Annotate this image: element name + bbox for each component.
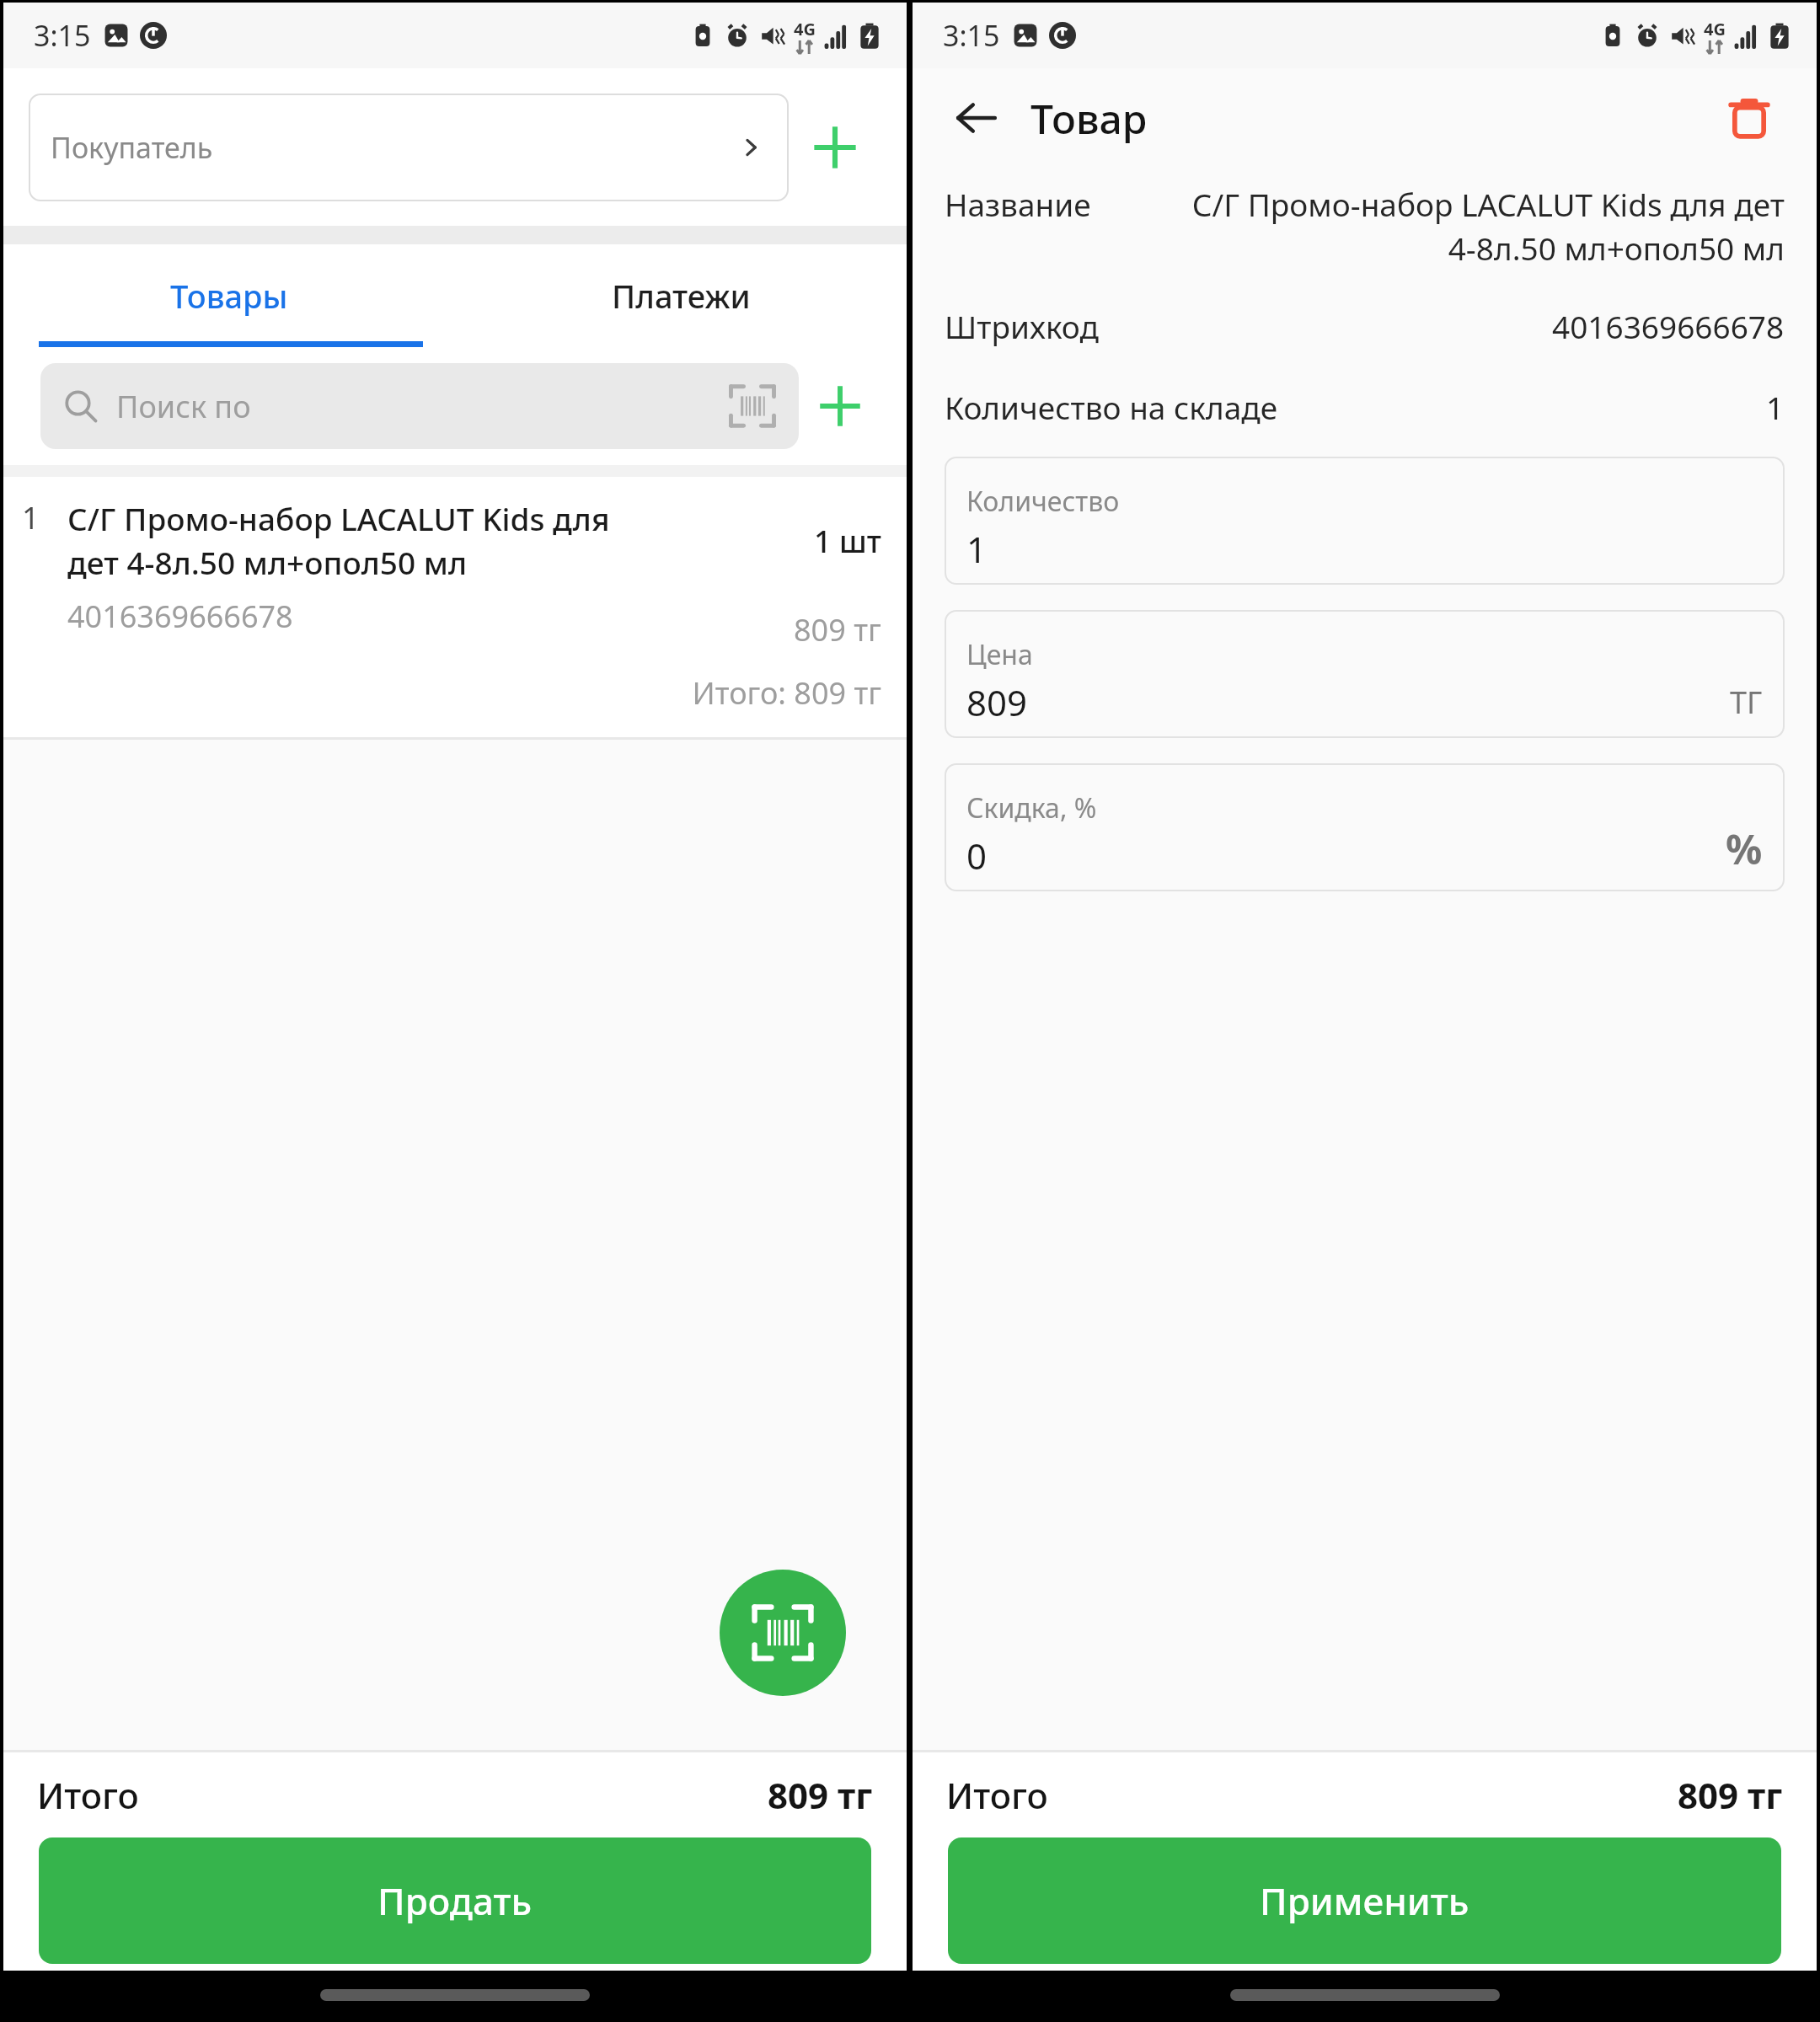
staticText: Товар — [1030, 91, 1712, 146]
staticText: 4G — [794, 18, 816, 40]
staticText: ТГ — [1730, 682, 1763, 723]
staticText: 0 — [966, 832, 988, 880]
staticText: Скидка, % — [966, 789, 1097, 826]
staticText: Применить — [1260, 1875, 1469, 1926]
staticText: 3:15 — [943, 16, 1000, 55]
staticText: Итого — [946, 1771, 1678, 1819]
staticText: 3:15 — [34, 16, 91, 55]
staticText: С/Г Промо-набор LACALUT Kids для дет 4-8… — [1138, 183, 1785, 270]
staticText: 809 тг — [1678, 1771, 1783, 1819]
button[interactable]: Товары — [3, 244, 455, 347]
button[interactable]: Цена — [945, 610, 1785, 738]
button[interactable]: Поиск по — [40, 363, 799, 449]
button[interactable]: Продать — [39, 1837, 871, 1964]
staticText: Штрихкод — [945, 305, 1552, 347]
staticText: Продать — [377, 1875, 533, 1926]
button[interactable]: Добавить покупателя — [789, 94, 881, 201]
staticText: % — [1726, 821, 1763, 876]
staticText: 809 тг — [768, 1771, 873, 1819]
staticText: 1 — [966, 525, 988, 573]
button[interactable]: Количество — [945, 457, 1785, 585]
staticText: 809 тг — [794, 609, 881, 650]
staticText: Количество на складе — [945, 386, 1766, 428]
button[interactable]: Добавить товар — [799, 363, 881, 449]
staticText: 1 — [1766, 386, 1785, 428]
button[interactable]: Скидка, % — [945, 763, 1785, 891]
button[interactable]: 1 — [3, 477, 907, 740]
button[interactable]: Покупатель — [29, 94, 789, 201]
button[interactable]: Применить — [948, 1837, 1781, 1964]
staticText: 4016369666678 — [67, 596, 293, 637]
staticText: 4016369666678 — [1552, 305, 1785, 347]
staticText: 809 — [966, 678, 1028, 726]
staticText: Поиск по — [116, 386, 728, 427]
button[interactable]: Платежи — [455, 244, 907, 347]
button[interactable]: Назад — [941, 83, 1012, 153]
staticText: 4G — [1704, 18, 1726, 40]
staticText: Цена — [966, 636, 1033, 673]
staticText: Товары — [170, 274, 288, 318]
staticText: 1 — [22, 497, 40, 538]
button[interactable]: Удалить — [1712, 81, 1786, 155]
staticText: Платежи — [612, 274, 751, 318]
staticText: 1 шт — [814, 521, 881, 562]
staticText: Название — [945, 183, 1138, 225]
staticText: С/Г Промо-набор LACALUT Kids для дет 4-8… — [67, 497, 661, 584]
button[interactable]: Сканировать штрихкод — [720, 1570, 846, 1696]
staticText: Количество — [966, 483, 1120, 520]
staticText: Итого — [37, 1771, 768, 1819]
staticText: Итого: 809 тг — [3, 672, 881, 714]
staticText: Покупатель — [51, 128, 736, 167]
